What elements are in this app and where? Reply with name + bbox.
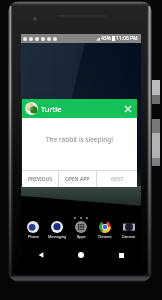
button[interactable]: Apps — [69, 221, 93, 239]
staticText: 11:06 PM — [116, 35, 138, 42]
staticText: Apps — [77, 234, 86, 239]
button[interactable]: Close — [119, 100, 137, 118]
staticText: Phone — [28, 234, 39, 239]
button[interactable]: Home — [61, 244, 101, 266]
button[interactable]: Camera — [117, 221, 141, 239]
staticText: PREVIOUS — [28, 176, 53, 183]
button[interactable]: NEXT — [97, 171, 137, 187]
button[interactable]: OPEN APP — [59, 171, 96, 187]
staticText: The rabbit is sleeping! — [46, 135, 113, 144]
button[interactable]: Phone — [21, 221, 45, 239]
staticText: NEXT — [111, 176, 124, 183]
button[interactable]: Messaging — [45, 221, 69, 239]
staticText: 43% — [101, 35, 111, 42]
staticText: Camera — [122, 234, 136, 239]
button[interactable]: Chrome — [93, 221, 117, 239]
button[interactable]: PREVIOUS — [22, 171, 58, 187]
button[interactable]: Recents — [101, 244, 141, 266]
staticText: Chrome — [98, 234, 112, 239]
button[interactable]: Back — [21, 244, 61, 266]
staticText: Turtle — [41, 104, 62, 114]
staticText: Messaging — [48, 234, 67, 239]
staticText: OPEN APP — [65, 176, 90, 183]
